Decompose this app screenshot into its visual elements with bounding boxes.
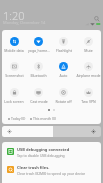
staticText: 1:20 [3,8,25,23]
staticText: Lock screen [4,99,24,104]
button[interactable]: Lock screen [2,88,26,104]
staticText: Monday, December 14 [3,20,46,25]
staticText: Mobile data [4,48,24,53]
button[interactable]: USB debugging connected [2,142,101,160]
button[interactable]: Auto brightness [51,62,76,78]
button[interactable]: yoga_home... [26,37,51,53]
button[interactable]: Brightness [2,126,101,137]
staticText: Today (0) [11,116,26,121]
staticText: This month (0) [33,116,56,121]
staticText: Airplane mode [76,73,101,78]
staticText: Mute [84,48,93,53]
button[interactable]: Flashlight [51,37,76,53]
button[interactable]: Two VPN [76,88,101,104]
staticText: USB debugging connected [17,147,70,152]
staticText: Flashlight [56,48,72,53]
staticText: Auto brightness [51,73,76,78]
button[interactable]: Screenshot [2,62,26,78]
staticText: Cast mode [30,99,48,104]
button[interactable]: Mobile data [2,37,26,53]
button[interactable]: Clear trash files. [2,160,101,178]
staticText: Clear trash files. [17,165,50,170]
button[interactable]: Mute [76,37,101,53]
staticText: Rotate off [55,99,72,104]
staticText: Screenshot [5,73,24,78]
button[interactable]: Rotate off [51,88,76,104]
staticText: Tap to disable USB debugging [17,153,65,158]
button[interactable]: Bluetooth [26,62,51,78]
button[interactable]: Cast mode [26,88,51,104]
staticText: Bluetooth [30,73,47,78]
staticText: yoga_home... [28,48,50,53]
button[interactable]: Search [92,14,101,23]
staticText: Clear trash (82MB) to speed up your devi… [17,171,86,176]
staticText: Two VPN [81,99,96,104]
button[interactable]: Airplane mode [76,62,101,78]
